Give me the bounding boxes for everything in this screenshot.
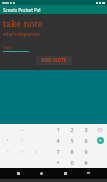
staticText: * (56, 159, 60, 166)
button[interactable]: Back (37, 169, 46, 178)
staticText: * (6, 138, 9, 143)
staticText: 0 (70, 159, 74, 166)
button[interactable]: Home (61, 169, 70, 178)
staticText: 5 (70, 137, 74, 144)
staticText: , (35, 127, 37, 132)
staticText: / (21, 138, 23, 143)
button[interactable]: Backspace (96, 126, 104, 134)
button[interactable]: 8 (65, 146, 79, 157)
staticText: 4 (56, 137, 60, 144)
staticText: what's important (3, 31, 40, 37)
button[interactable]: 9 (79, 146, 93, 157)
button[interactable]: # (79, 157, 93, 168)
button[interactable]: 0 (65, 157, 79, 168)
staticText: ( (7, 149, 9, 154)
button[interactable]: ADD NOTE (36, 56, 72, 65)
button[interactable]: Keyboard (14, 169, 23, 178)
staticText: 2 (70, 126, 74, 133)
button[interactable]: Recents (84, 169, 93, 178)
staticText: Topic (3, 45, 13, 50)
button[interactable]: ( (0, 146, 15, 157)
button[interactable]: 2 (65, 124, 79, 135)
button[interactable]: * (51, 157, 65, 168)
staticText: take note (3, 17, 43, 29)
button[interactable]: Enter (97, 137, 104, 144)
button[interactable]: = (29, 146, 43, 157)
staticText: 6 (84, 137, 88, 144)
button[interactable]: 4 (51, 135, 65, 146)
button[interactable]: ) (15, 146, 29, 157)
staticText: = (35, 149, 38, 154)
staticText: 7 (56, 148, 60, 155)
button[interactable]: 1 (51, 124, 65, 135)
staticText: . (35, 138, 37, 143)
staticText: 8 (70, 148, 74, 155)
staticText: Scouts Pocket Pal (3, 7, 41, 13)
button[interactable]: 5 (65, 135, 79, 146)
button[interactable]: 7 (51, 146, 65, 157)
staticText: 9 (84, 148, 88, 155)
button[interactable]: Topic (3, 45, 29, 52)
button[interactable]: / (15, 135, 29, 146)
staticText: ) (21, 149, 23, 154)
staticText: ADD NOTE (41, 57, 67, 64)
staticText: - (7, 127, 9, 132)
button[interactable]: 6 (79, 135, 93, 146)
staticText: + (21, 127, 24, 132)
button[interactable]: 3 (79, 124, 93, 135)
button[interactable]: * (0, 135, 15, 146)
staticText: _ (21, 160, 23, 165)
button[interactable]: Scouts Pocket Pal (0, 5, 107, 14)
staticText: # (84, 159, 88, 166)
staticText: 1 (56, 126, 60, 133)
staticText: 3 (84, 126, 88, 133)
button[interactable]: + (15, 124, 29, 135)
